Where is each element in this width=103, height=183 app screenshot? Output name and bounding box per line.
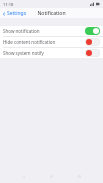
staticText: Show system notify xyxy=(3,50,85,56)
button[interactable]: Recent apps xyxy=(75,172,84,181)
button[interactable]: Toggle off xyxy=(85,38,100,46)
button[interactable]: Show system notify xyxy=(0,48,103,58)
staticText: Hide content notification xyxy=(3,39,85,45)
button[interactable]: Toggle off xyxy=(85,49,100,57)
staticText: Settings xyxy=(7,10,27,17)
button[interactable]: Settings xyxy=(0,9,30,18)
staticText: Notification xyxy=(37,10,66,17)
staticText: Show notification xyxy=(3,28,85,34)
button[interactable]: Hide content notification xyxy=(0,37,103,47)
button[interactable]: Show notification xyxy=(0,26,103,36)
staticText: 11:18 xyxy=(3,2,14,7)
button[interactable]: Toggle on xyxy=(85,27,100,35)
